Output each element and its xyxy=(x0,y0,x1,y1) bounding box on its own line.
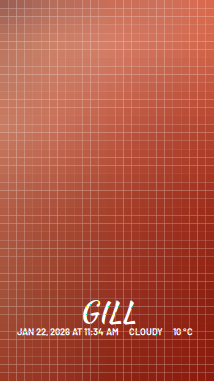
staticText: 10 °C xyxy=(173,326,193,337)
staticText: JAN 22, 2026 AT 11:34 AM xyxy=(17,326,119,337)
staticText: GILL xyxy=(79,291,135,333)
staticText: CLOUDY xyxy=(129,326,163,337)
